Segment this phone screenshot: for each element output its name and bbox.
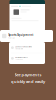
staticText: Sports Equipment bbox=[8, 33, 33, 37]
staticText: Tap to open bbox=[15, 58, 23, 60]
button[interactable]: Review payments bbox=[11, 53, 43, 63]
staticText: Review payments bbox=[15, 56, 28, 58]
button[interactable]: Latest transactions bbox=[11, 42, 43, 53]
staticText: Latest transactions bbox=[15, 46, 32, 48]
staticText: View all activity bbox=[15, 48, 23, 50]
button[interactable]: Sports Equipment bbox=[0, 30, 53, 42]
staticText: See payments bbox=[14, 72, 41, 77]
staticText: quickly and easily bbox=[11, 79, 45, 84]
staticText: Paid · 12 Jun bbox=[8, 37, 15, 39]
